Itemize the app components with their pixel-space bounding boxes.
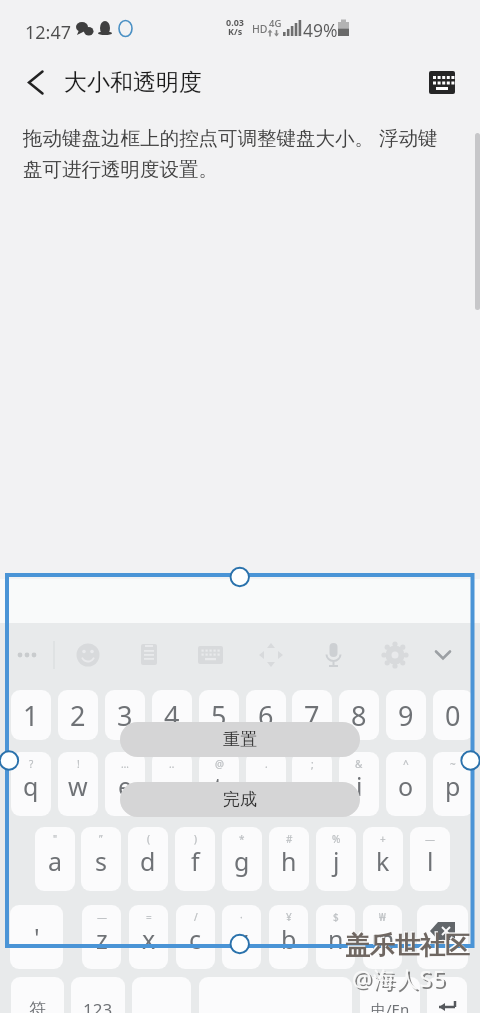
button[interactable]: 7 bbox=[292, 690, 332, 740]
button[interactable]: 123 bbox=[71, 977, 125, 1013]
staticText: 拖动键盘边框上的控点可调整键盘大小。 浮动键 bbox=[23, 124, 438, 151]
button[interactable]: 重置 bbox=[120, 722, 360, 757]
button[interactable]: 2 bbox=[58, 690, 98, 740]
button[interactable]: · bbox=[222, 905, 261, 969]
staticText: h bbox=[281, 844, 297, 878]
button[interactable]: ” bbox=[81, 827, 121, 891]
button[interactable]: " bbox=[35, 827, 75, 891]
button[interactable]: 5 bbox=[199, 690, 239, 740]
button[interactable]: 完成 bbox=[120, 782, 360, 817]
staticText: v bbox=[235, 922, 248, 956]
staticText: i bbox=[356, 769, 363, 803]
staticText: 4G bbox=[269, 17, 282, 30]
staticText: o bbox=[398, 769, 414, 803]
button[interactable]: 符 bbox=[11, 977, 64, 1013]
button[interactable]: . bbox=[246, 752, 286, 816]
button[interactable]: ; bbox=[292, 752, 332, 816]
button[interactable]: = bbox=[129, 905, 168, 969]
staticText: u bbox=[304, 769, 320, 803]
staticText: ” bbox=[99, 832, 103, 846]
staticText: t bbox=[214, 769, 224, 803]
button[interactable]: * bbox=[222, 827, 262, 891]
button[interactable]: $ bbox=[316, 905, 355, 969]
button[interactable]: — bbox=[82, 905, 121, 969]
staticText: 4 bbox=[164, 697, 180, 734]
button[interactable] bbox=[16, 62, 56, 102]
staticText: z bbox=[96, 922, 108, 956]
staticText: · bbox=[240, 910, 243, 924]
staticText: ( bbox=[147, 832, 150, 846]
button[interactable]: … bbox=[105, 752, 145, 816]
button[interactable] bbox=[427, 977, 467, 1013]
button[interactable]: 4 bbox=[152, 690, 192, 740]
button[interactable]: & bbox=[339, 752, 379, 816]
button[interactable]: 3 bbox=[105, 690, 145, 740]
button[interactable]: 1 bbox=[11, 690, 51, 740]
staticText: ₩ bbox=[379, 910, 386, 924]
button[interactable]: 9 bbox=[386, 690, 426, 740]
button[interactable]: @ bbox=[199, 752, 239, 816]
button[interactable]: % bbox=[316, 827, 356, 891]
button[interactable]: ^ bbox=[386, 752, 426, 816]
staticText: 5 bbox=[211, 697, 227, 734]
staticText: — bbox=[97, 910, 107, 924]
button[interactable]: ) bbox=[175, 827, 215, 891]
staticText: 2 bbox=[70, 697, 86, 734]
button[interactable]: + bbox=[363, 827, 403, 891]
staticText: … bbox=[121, 757, 129, 771]
button[interactable]: 6 bbox=[246, 690, 286, 740]
button[interactable]: ( bbox=[128, 827, 168, 891]
button[interactable]: # bbox=[269, 827, 309, 891]
staticText: e bbox=[118, 769, 133, 803]
staticText: = bbox=[146, 910, 152, 924]
staticText: & bbox=[355, 757, 363, 771]
staticText: g bbox=[234, 844, 250, 878]
button[interactable]: 0 bbox=[433, 690, 473, 740]
staticText: @海人S5 bbox=[354, 965, 449, 995]
staticText: ) bbox=[194, 832, 197, 846]
staticText: # bbox=[286, 832, 293, 846]
button[interactable] bbox=[422, 62, 462, 102]
staticText: . bbox=[265, 757, 268, 771]
button[interactable]: ¥ bbox=[269, 905, 308, 969]
staticText: b bbox=[281, 922, 297, 956]
staticText: 1 bbox=[23, 697, 39, 734]
staticText: r bbox=[167, 769, 178, 803]
staticText: 8 bbox=[351, 697, 367, 734]
staticText: — bbox=[425, 832, 435, 846]
staticText: l bbox=[427, 844, 434, 878]
button[interactable]: / bbox=[176, 905, 215, 969]
staticText: 重置 bbox=[223, 729, 257, 750]
staticText: / bbox=[194, 910, 198, 924]
staticText: ' bbox=[34, 920, 40, 954]
staticText: q bbox=[23, 769, 39, 803]
staticText: ? bbox=[29, 757, 34, 771]
staticText: 符 bbox=[29, 999, 46, 1013]
button[interactable]: ₩ bbox=[363, 905, 402, 969]
staticText: w bbox=[68, 769, 88, 803]
button[interactable]: 8 bbox=[339, 690, 379, 740]
button[interactable]: ? bbox=[11, 752, 51, 816]
staticText: x bbox=[142, 922, 156, 956]
staticText: 盖乐世社区 bbox=[344, 929, 469, 960]
staticText: 7 bbox=[304, 697, 320, 734]
button[interactable]: — bbox=[410, 827, 450, 891]
staticText: 3 bbox=[117, 697, 133, 734]
button[interactable]: 中/En bbox=[360, 977, 420, 1013]
staticText: 9 bbox=[398, 697, 414, 734]
button[interactable]: ' bbox=[10, 905, 63, 969]
button[interactable]: ! bbox=[58, 752, 98, 816]
button[interactable]: ~ bbox=[433, 752, 473, 816]
staticText: @海人S5 bbox=[352, 963, 447, 993]
button[interactable] bbox=[417, 905, 468, 969]
staticText: ; bbox=[311, 757, 314, 771]
staticText: HD bbox=[252, 22, 268, 36]
staticText: * bbox=[239, 832, 245, 846]
staticText: f bbox=[191, 844, 200, 878]
staticText: 中/En bbox=[371, 999, 410, 1013]
staticText: m bbox=[371, 922, 395, 956]
button[interactable]: ‥ bbox=[152, 752, 192, 816]
staticText: k bbox=[376, 844, 390, 878]
